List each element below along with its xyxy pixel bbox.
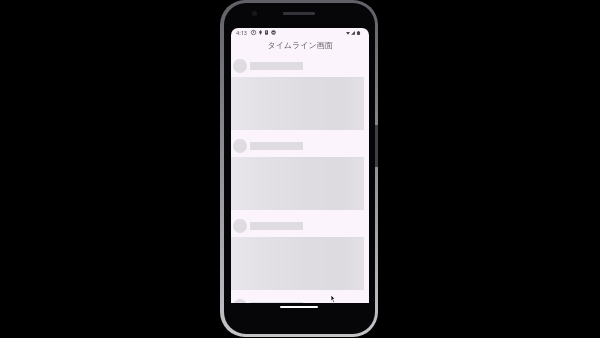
button[interactable]: [231, 210, 369, 290]
staticText: タイムライン画面: [267, 40, 333, 50]
button[interactable]: [231, 130, 369, 210]
button[interactable]: [231, 50, 369, 130]
staticText: 4:13: [236, 29, 247, 36]
button[interactable]: [231, 290, 369, 303]
